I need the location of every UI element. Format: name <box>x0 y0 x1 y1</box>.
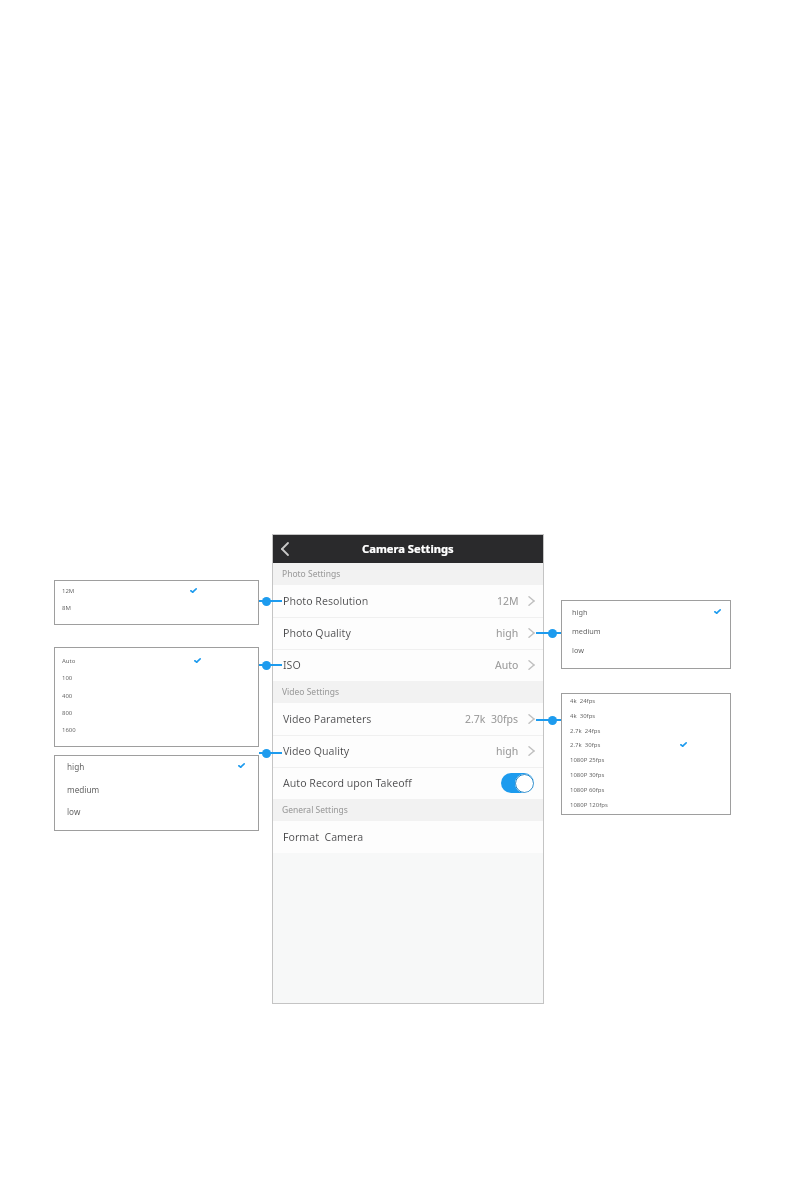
staticText: 400 <box>62 692 73 700</box>
staticText: 2.7k 30fps <box>465 712 519 726</box>
staticText: 2.7k 24fps <box>570 727 601 735</box>
staticText: ISO <box>283 658 301 672</box>
staticText: 1080P 60fps <box>570 786 605 794</box>
staticText: 1600 <box>62 726 76 734</box>
staticText: Auto <box>495 658 519 672</box>
staticText: 12M <box>497 594 519 608</box>
staticText: 2.7k 30fps <box>570 741 601 749</box>
staticText: high <box>496 626 519 640</box>
staticText: high <box>67 761 85 772</box>
staticText: Photo Settings <box>282 568 341 580</box>
staticText: low <box>67 806 81 817</box>
button[interactable]: Photo Resolution <box>272 585 544 617</box>
staticText: Camera Settings <box>362 541 454 556</box>
staticText: Video Settings <box>282 686 340 698</box>
staticText: Format Camera <box>283 830 364 844</box>
staticText: high <box>496 744 519 758</box>
staticText: Auto <box>62 657 76 665</box>
button[interactable]: Photo Quality <box>272 617 544 649</box>
staticText: medium <box>67 784 100 795</box>
staticText: 4k 24fps <box>570 697 596 705</box>
button[interactable]: Video Parameters <box>272 703 544 735</box>
staticText: Video Parameters <box>283 712 372 726</box>
staticText: Photo Quality <box>283 626 351 640</box>
staticText: 800 <box>62 709 73 717</box>
button[interactable]: Video Quality <box>272 735 544 767</box>
button[interactable]: ISO <box>272 649 544 681</box>
staticText: Photo Resolution <box>283 594 369 608</box>
staticText: 12M <box>62 587 75 595</box>
staticText: General Settings <box>282 804 348 816</box>
staticText: 8M <box>62 604 71 612</box>
button[interactable] <box>276 540 294 558</box>
staticText: medium <box>572 626 601 636</box>
staticText: 1080P 30fps <box>570 771 605 779</box>
staticText: Video Quality <box>283 744 350 758</box>
staticText: 4k 30fps <box>570 712 596 720</box>
staticText: high <box>572 607 588 617</box>
button[interactable]: Format Camera <box>272 821 544 853</box>
button[interactable]: Auto Record upon Takeoff <box>272 767 544 799</box>
staticText: 100 <box>62 674 73 682</box>
staticText: 1080P 120fps <box>570 801 608 809</box>
button[interactable] <box>501 773 534 793</box>
staticText: Auto Record upon Takeoff <box>283 776 412 790</box>
staticText: 1080P 25fps <box>570 756 605 764</box>
staticText: low <box>572 645 584 655</box>
